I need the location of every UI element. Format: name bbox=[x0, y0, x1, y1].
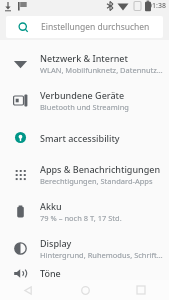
other: Töne bbox=[13, 267, 28, 280]
other: Apps & Benachrichtigungen bbox=[13, 167, 28, 182]
staticText: Apps & Benachrichtigungen bbox=[40, 163, 161, 175]
button[interactable]: Recents bbox=[113, 280, 169, 300]
other: Verbundene Geräte bbox=[13, 93, 28, 108]
button[interactable]: Töne bbox=[0, 267, 169, 280]
staticText: Akku bbox=[40, 200, 62, 212]
staticText: 01:38 bbox=[148, 1, 166, 11]
other: Akku bbox=[13, 204, 28, 219]
button[interactable]: Home bbox=[57, 280, 113, 300]
staticText: Berechtigungen, Standard-Apps bbox=[40, 176, 153, 186]
staticText: Display bbox=[40, 237, 72, 249]
staticText: Einstellungen durchsuchen bbox=[41, 21, 150, 33]
staticText: WLAN, Mobilfunknetz, Datennutzung, Ho… bbox=[40, 65, 163, 75]
staticText: Smart accessibility bbox=[40, 132, 120, 144]
staticText: Bluetooth und Streaming bbox=[40, 102, 129, 112]
other: Netzwerk & Internet bbox=[13, 56, 28, 71]
button[interactable]: Apps & Benachrichtigungen bbox=[0, 156, 169, 193]
staticText: Töne bbox=[40, 267, 61, 279]
staticText: 79 % – noch 8 T, 17 Std. bbox=[40, 213, 122, 223]
button[interactable]: Back bbox=[0, 280, 57, 300]
other: Display bbox=[13, 241, 28, 256]
staticText: Netzwerk & Internet bbox=[40, 52, 128, 64]
staticText: Verbundene Geräte bbox=[40, 89, 125, 101]
other: Smart accessibility bbox=[13, 130, 28, 145]
button[interactable]: Smart accessibility bbox=[0, 119, 169, 156]
staticText: Hintergrund, Ruhemodus, Schriftgröße bbox=[40, 250, 163, 260]
button[interactable]: Verbundene Geräte bbox=[0, 82, 169, 119]
button[interactable]: Einstellungen durchsuchen bbox=[6, 16, 163, 38]
button[interactable]: Display bbox=[0, 230, 169, 267]
button[interactable]: Netzwerk & Internet bbox=[0, 45, 169, 82]
button[interactable]: Akku bbox=[0, 193, 169, 230]
